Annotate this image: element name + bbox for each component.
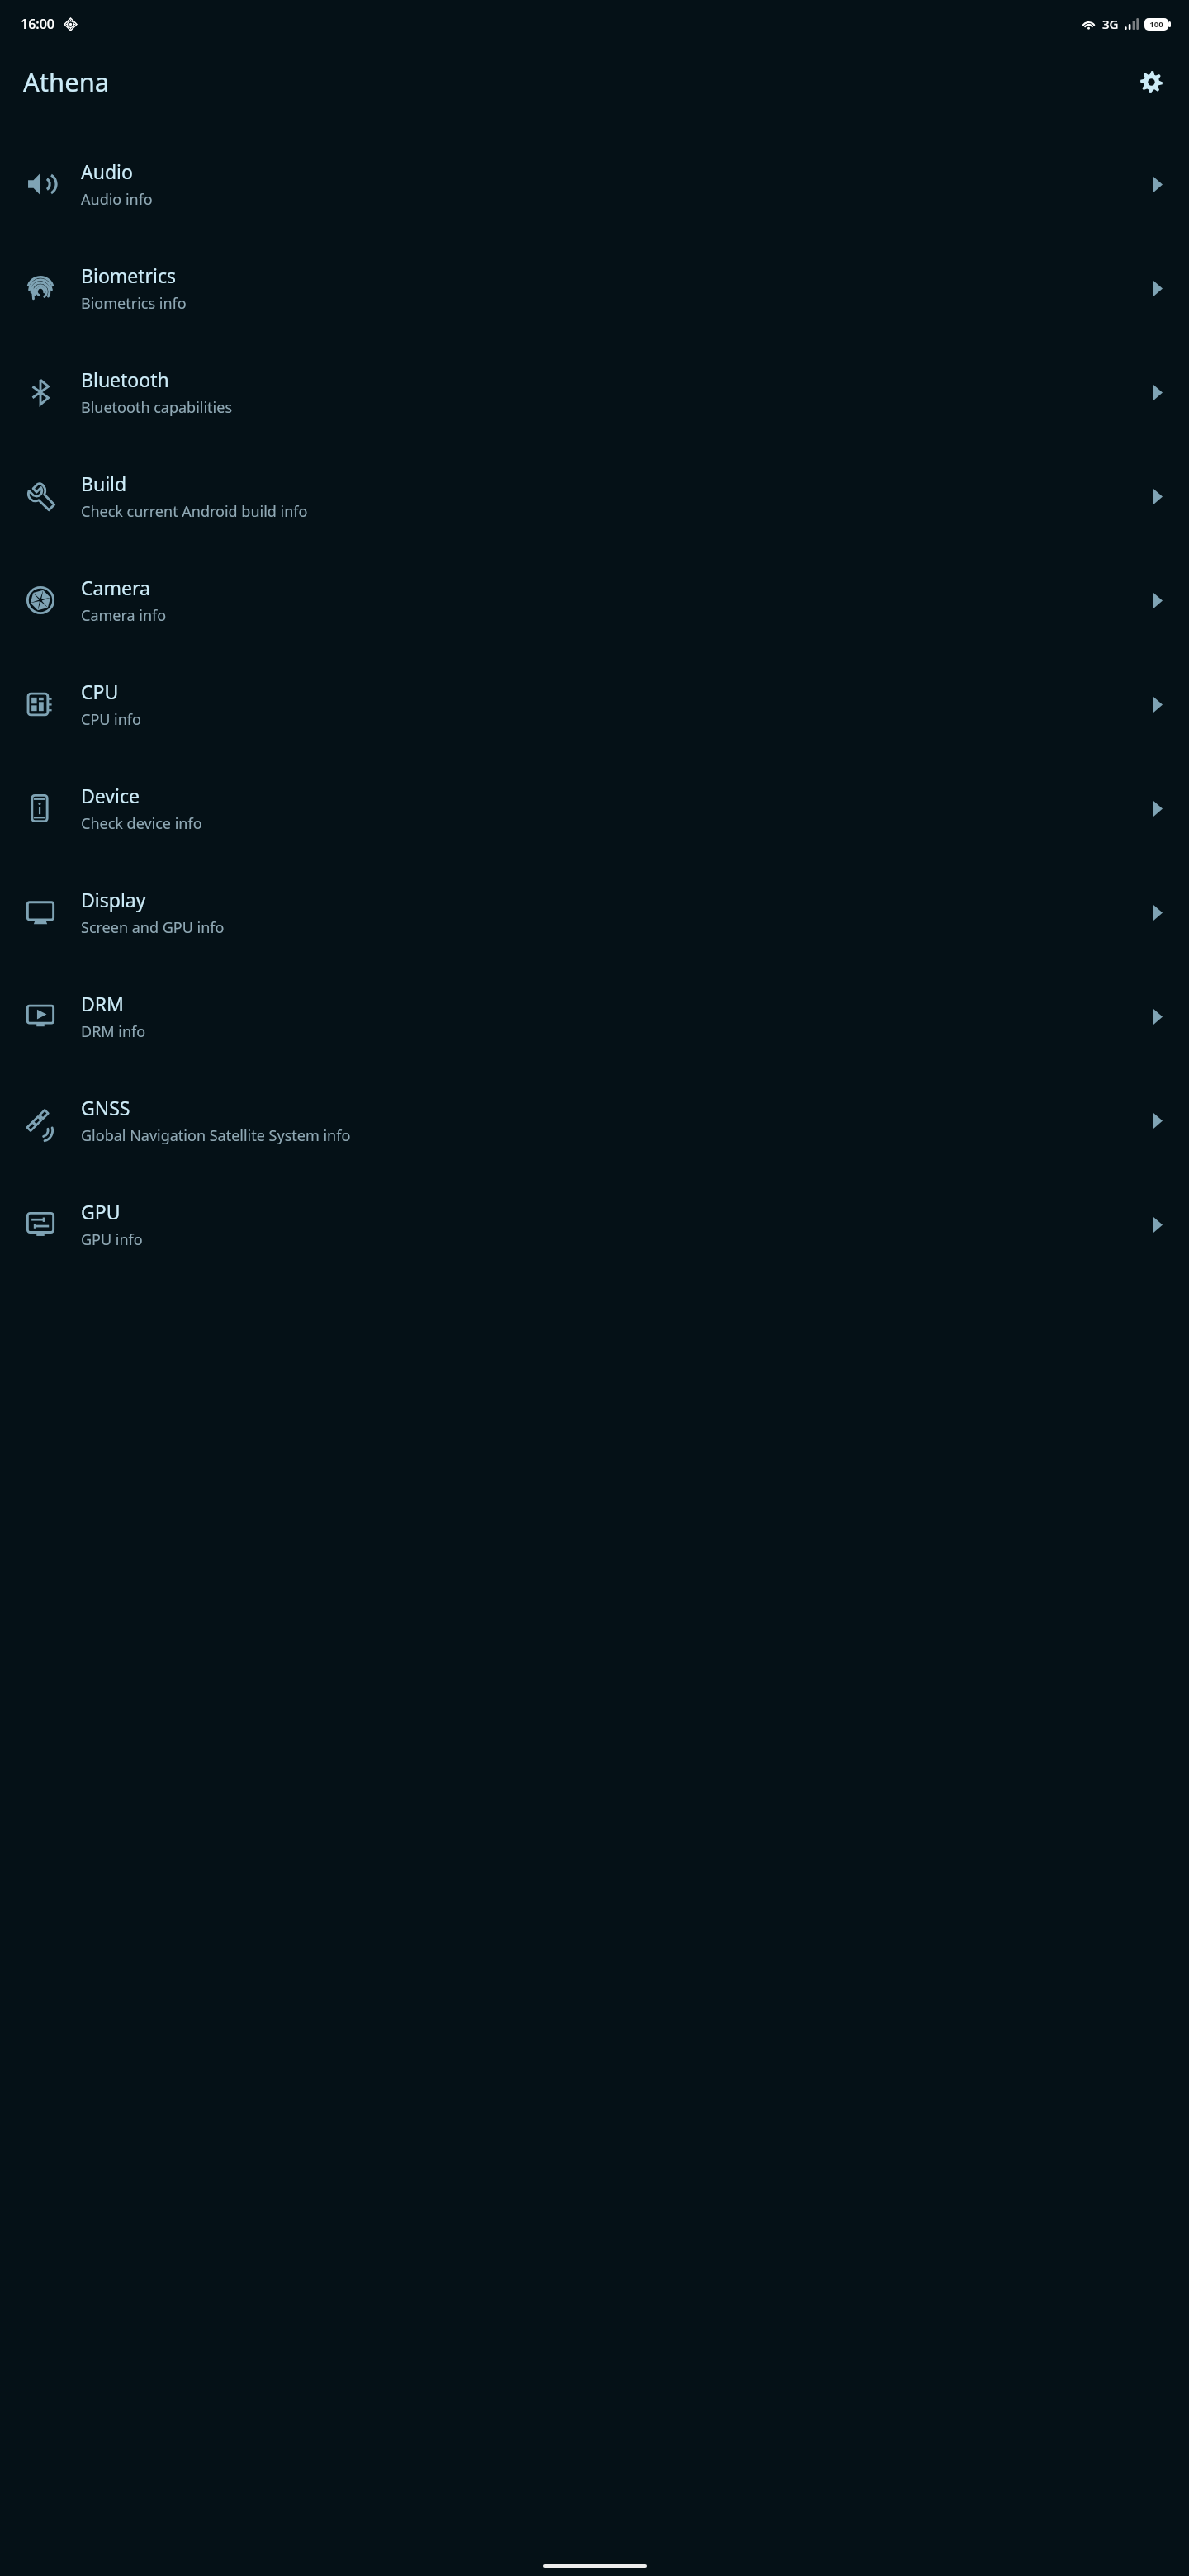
staticText: DRM info [81, 1021, 146, 1042]
staticText: 3G [1102, 16, 1119, 32]
staticText: Global Navigation Satellite System info [81, 1125, 351, 1146]
button[interactable]: Settings [1131, 62, 1171, 102]
staticText: Bluetooth capabilities [81, 397, 233, 418]
staticText: 16:00 [21, 15, 54, 33]
staticText: Device [81, 783, 140, 808]
button[interactable]: Biometrics [0, 236, 1189, 340]
staticText: Camera info [81, 605, 167, 626]
staticText: DRM [81, 991, 124, 1016]
staticText: Camera [81, 575, 150, 600]
staticText: Audio [81, 159, 133, 184]
button[interactable]: GNSS [0, 1068, 1189, 1172]
staticText: 100 [1149, 19, 1163, 30]
staticText: Bluetooth [81, 367, 169, 392]
button[interactable]: GPU [0, 1172, 1189, 1276]
button[interactable]: Build [0, 444, 1189, 548]
button[interactable]: Device [0, 756, 1189, 860]
staticText: GPU info [81, 1229, 143, 1250]
button[interactable]: Display [0, 860, 1189, 964]
staticText: Biometrics info [81, 293, 187, 314]
staticText: Build [81, 471, 127, 496]
staticText: Check current Android build info [81, 501, 308, 522]
staticText: Screen and GPU info [81, 917, 225, 938]
button[interactable]: Camera [0, 548, 1189, 652]
staticText: Audio info [81, 189, 153, 210]
button[interactable]: DRM [0, 964, 1189, 1068]
staticText: GNSS [81, 1095, 130, 1120]
staticText: Check device info [81, 813, 202, 834]
staticText: Biometrics [81, 263, 177, 288]
staticText: CPU [81, 679, 119, 704]
staticText: Display [81, 887, 146, 912]
button[interactable]: Bluetooth [0, 340, 1189, 444]
staticText: CPU info [81, 709, 141, 730]
button[interactable]: Audio [0, 132, 1189, 236]
staticText: GPU [81, 1199, 121, 1224]
staticText: Athena [23, 64, 110, 99]
button[interactable]: CPU [0, 652, 1189, 756]
